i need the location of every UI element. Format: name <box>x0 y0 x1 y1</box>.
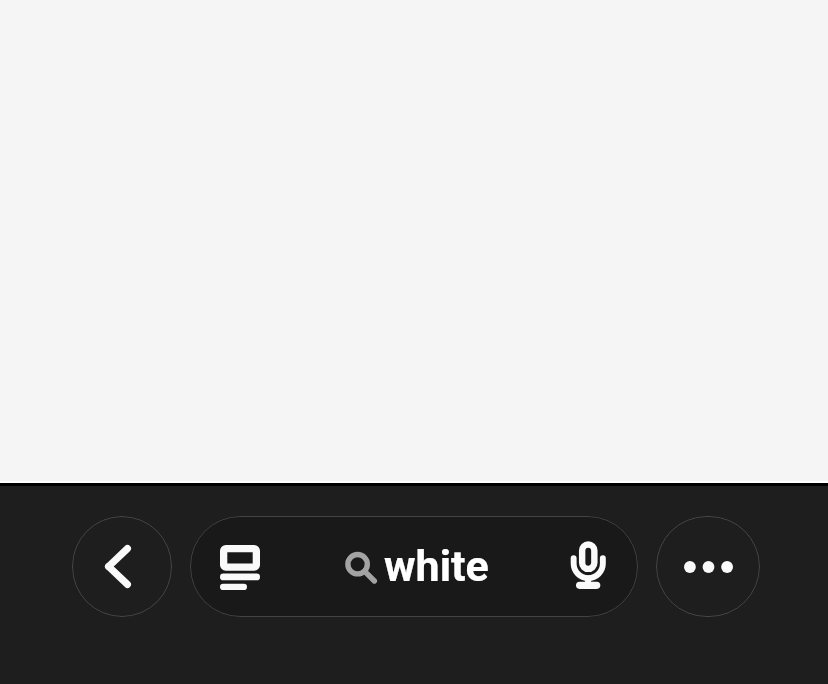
button[interactable]: More options <box>656 516 760 617</box>
staticText: white <box>384 541 489 591</box>
button[interactable]: white <box>190 516 638 617</box>
button[interactable]: Change view <box>190 516 290 617</box>
button[interactable]: Back <box>72 516 172 617</box>
button[interactable]: Voice search <box>548 516 638 617</box>
